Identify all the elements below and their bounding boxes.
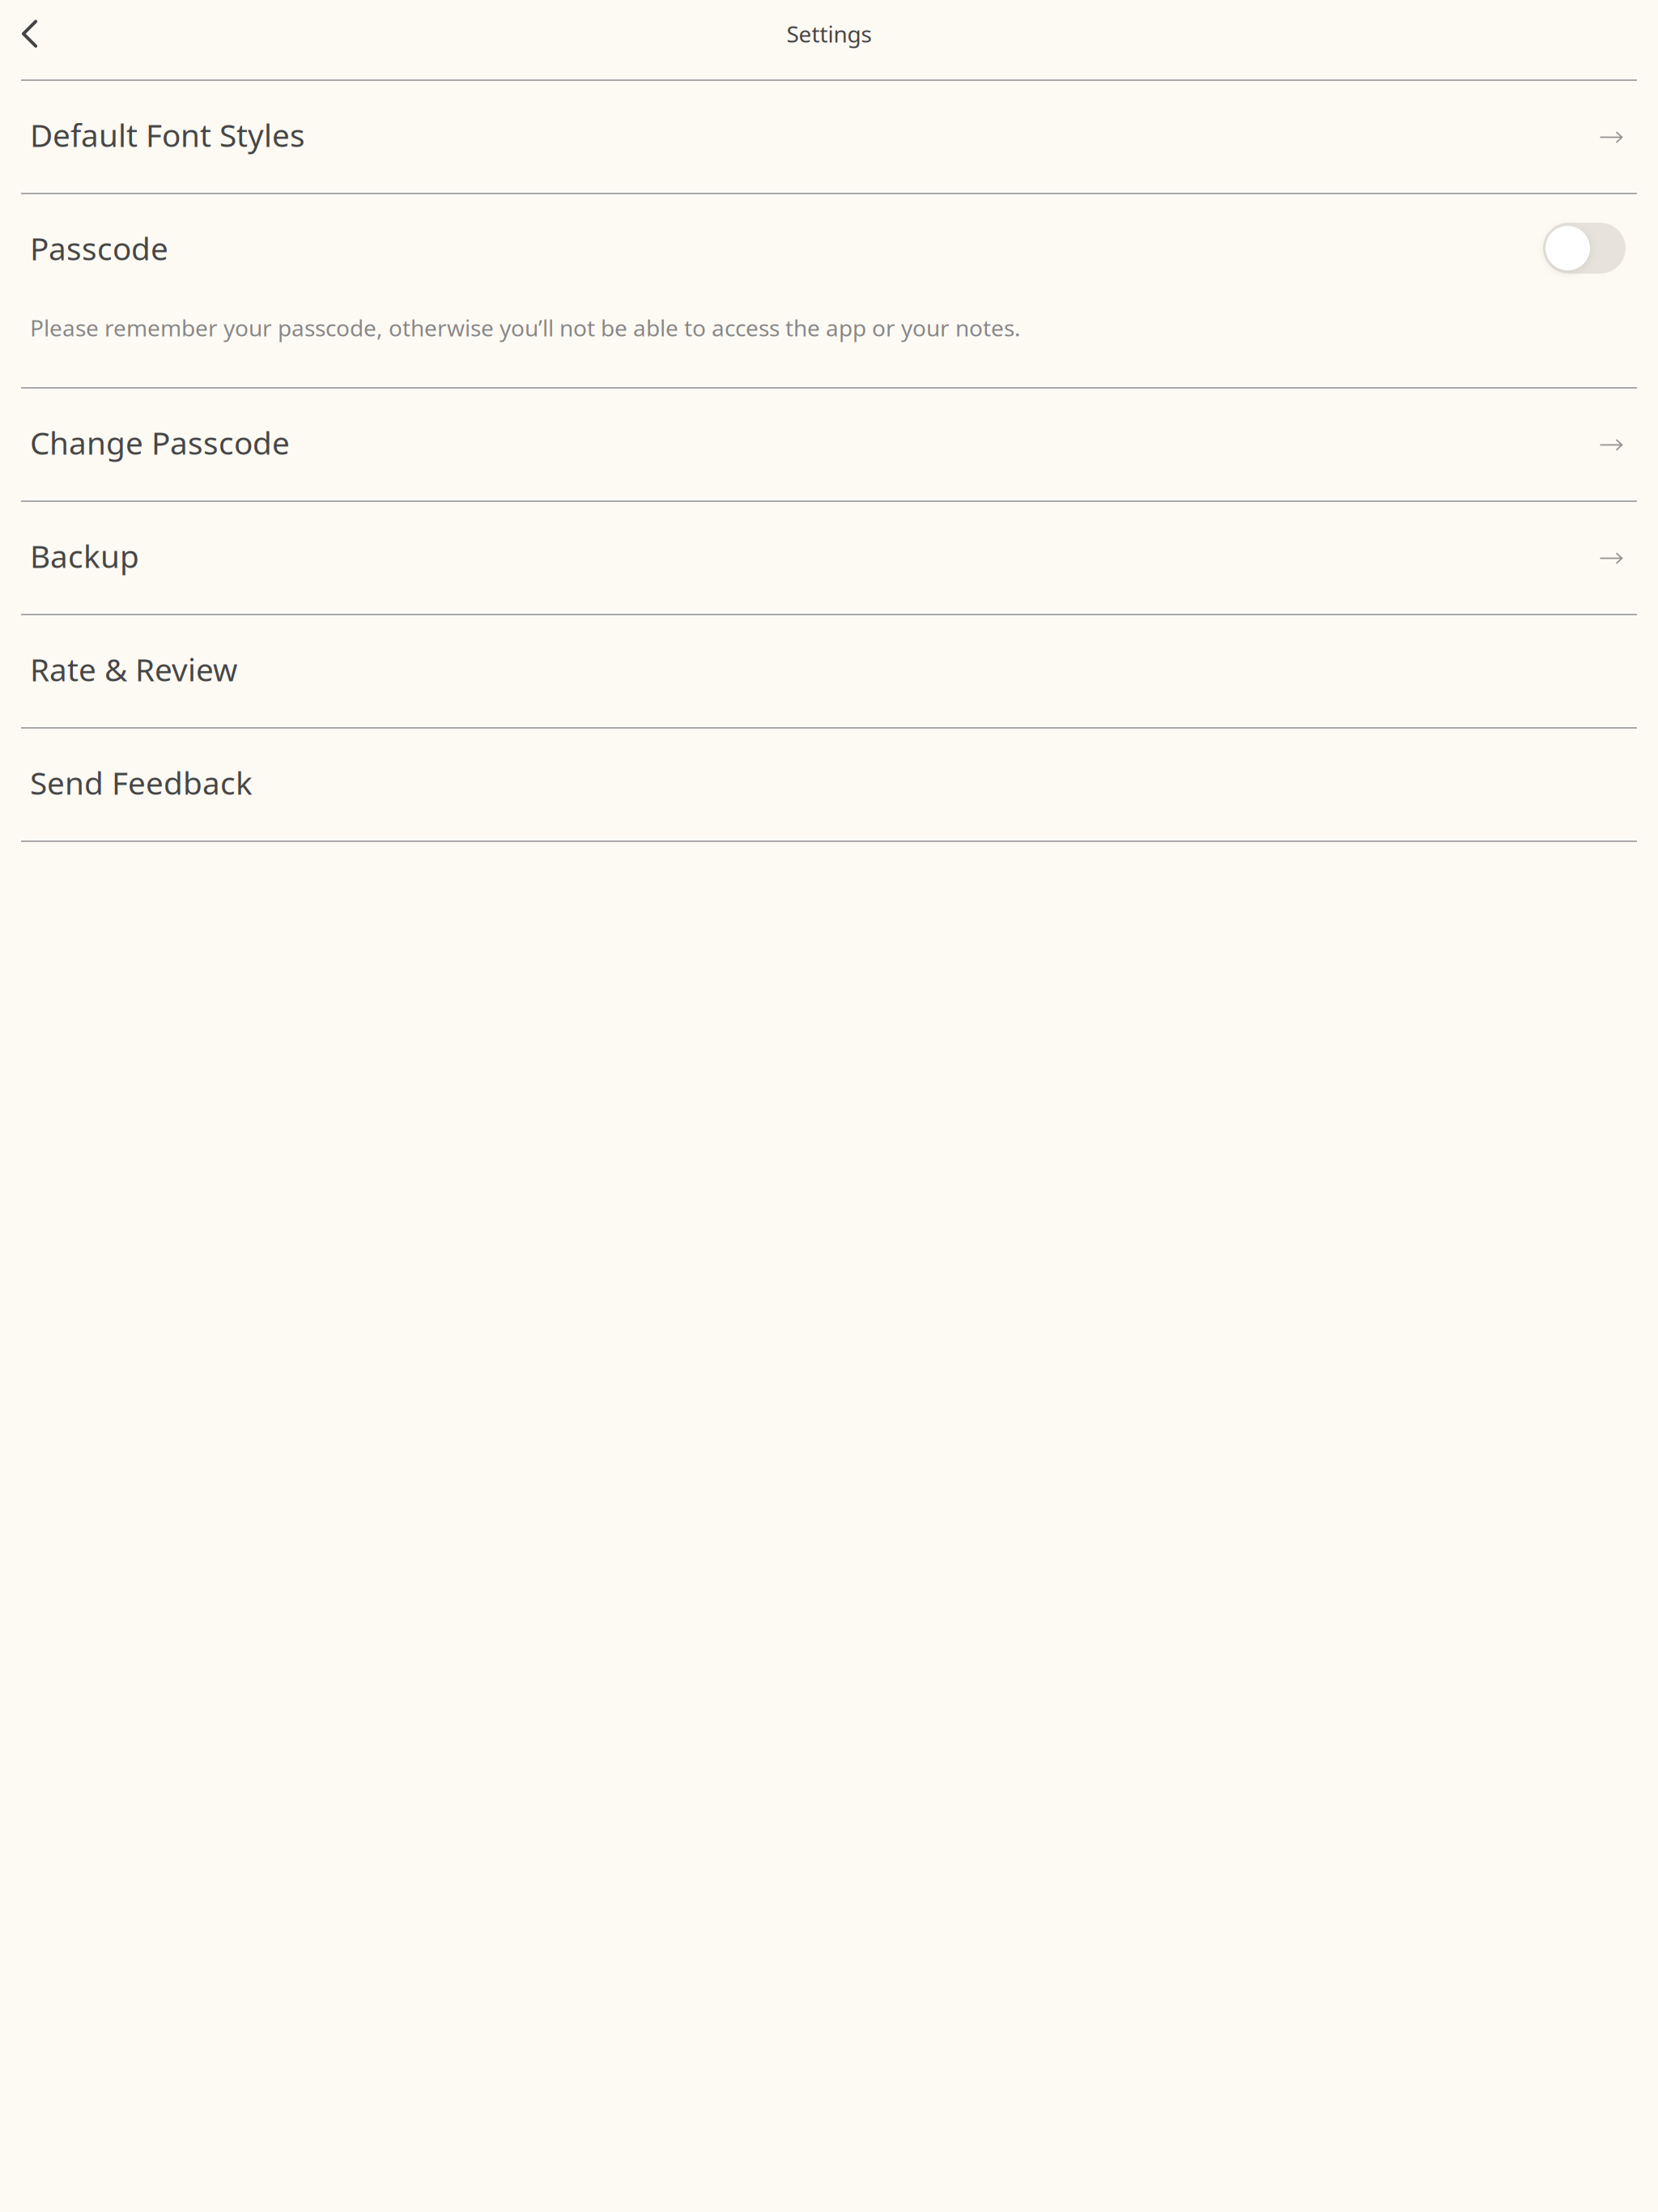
staticText: Settings [786,19,872,49]
button[interactable]: Change Passcode [0,389,1658,500]
staticText: Default Font Styles [30,114,305,156]
staticText: Rate & Review [30,648,237,690]
button[interactable]: Passcode [1543,225,1626,276]
button[interactable]: Default Font Styles [0,82,1658,193]
button[interactable]: Backup [0,503,1658,614]
button[interactable]: Rate & Review [0,616,1658,727]
staticText: Passcode [30,227,168,269]
button[interactable]: Send Feedback [0,730,1658,840]
staticText: Send Feedback [30,762,253,803]
staticText: Backup [30,535,139,577]
button[interactable]: Back [0,0,70,68]
staticText: Please remember your passcode, otherwise… [30,313,1021,343]
staticText: Change Passcode [30,422,290,463]
